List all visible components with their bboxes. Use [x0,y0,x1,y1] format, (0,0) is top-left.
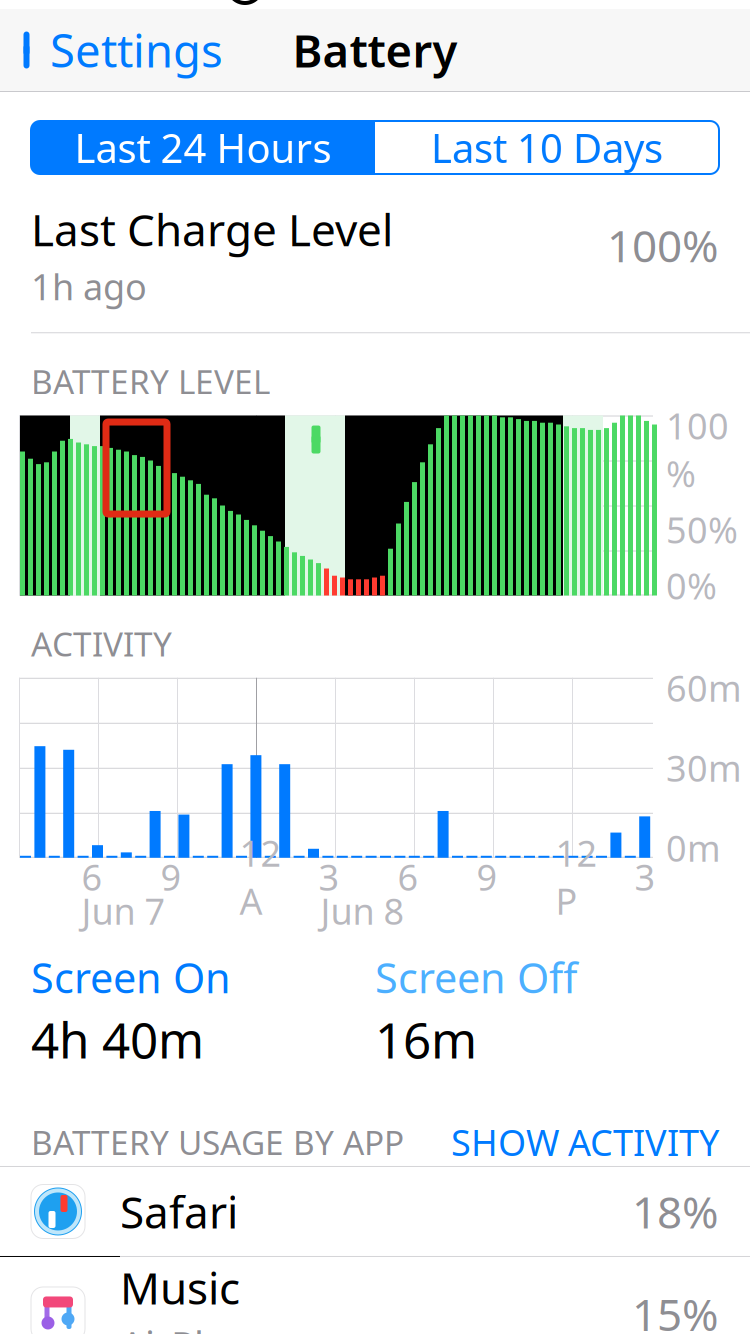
staticText: Last Charge Level [31,200,393,258]
button[interactable]: SHOW ACTIVITY [451,1118,719,1166]
button[interactable]: Music [0,1257,750,1334]
button[interactable]: Last 24 Hours [31,121,375,174]
staticText: AirPlay [120,1318,246,1334]
button[interactable]: Safari [0,1167,750,1256]
staticText: 15% [632,1285,719,1334]
button[interactable]: Settings [0,12,223,88]
staticText: Battery [292,20,457,80]
staticText: 30m [666,744,742,792]
staticText: 3 [318,853,339,901]
staticText: 18% [632,1182,719,1241]
staticText: 16m [375,1007,477,1072]
staticText: 1h ago [31,262,147,310]
staticText: 60m [666,664,742,712]
staticText: 9 [476,853,497,901]
staticText: Screen On [31,950,231,1005]
staticText: 12 A [239,829,281,925]
staticText: 50% [666,505,738,553]
staticText: 0% [666,562,717,609]
staticText: 4h 40m [31,1007,204,1072]
staticText: Last 10 Days [431,121,663,174]
staticText: SHOW ACTIVITY [451,1118,719,1166]
staticText: 12 P [555,829,597,925]
staticText: 0m [666,824,721,872]
staticText: Safari [120,1182,238,1241]
staticText: Screen Off [375,950,577,1005]
staticText: 100% [666,401,729,497]
staticText: Jun 8 [320,887,404,935]
staticText: Settings [50,20,223,80]
staticText: 9 [160,853,181,901]
staticText: 3 [634,853,655,901]
staticText: Music [120,1258,240,1316]
button[interactable]: Last 10 Days [375,121,719,174]
staticText: BATTERY LEVEL [31,359,270,404]
staticText: BATTERY USAGE BY APP [31,1120,404,1164]
staticText: ACTIVITY [31,621,172,666]
staticText: 6 [397,853,418,901]
staticText: Jun 7 [81,887,165,935]
staticText: 6 [81,853,102,901]
staticText: 100% [607,216,719,274]
staticText: Last 24 Hours [74,121,331,174]
